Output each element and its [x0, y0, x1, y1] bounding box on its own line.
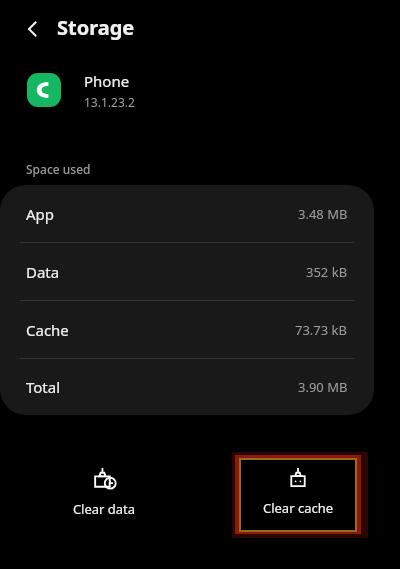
staticText: Phone [84, 71, 130, 91]
staticText: 73.73 kB [295, 321, 348, 339]
staticText: App [26, 204, 55, 224]
button[interactable]: Total [0, 359, 374, 415]
staticText: Cache [26, 320, 69, 340]
staticText: 3.90 MB [298, 378, 348, 396]
button[interactable]: Back [14, 10, 52, 48]
staticText: Space used [26, 161, 91, 177]
button[interactable]: Clear data [44, 466, 164, 526]
button[interactable]: Cache [0, 301, 374, 358]
button[interactable]: Data [0, 243, 374, 300]
button[interactable]: Phone [0, 66, 400, 114]
staticText: 13.1.23.2 [84, 94, 135, 110]
staticText: Storage [57, 14, 135, 41]
staticText: Total [26, 377, 61, 397]
staticText: Clear data [44, 500, 164, 518]
staticText: 352 kB [306, 263, 348, 281]
button[interactable]: Clear cache [241, 466, 355, 526]
staticText: 3.48 MB [298, 205, 348, 223]
staticText: Clear cache [241, 499, 355, 517]
button[interactable]: App [0, 185, 374, 242]
staticText: Data [26, 262, 60, 282]
